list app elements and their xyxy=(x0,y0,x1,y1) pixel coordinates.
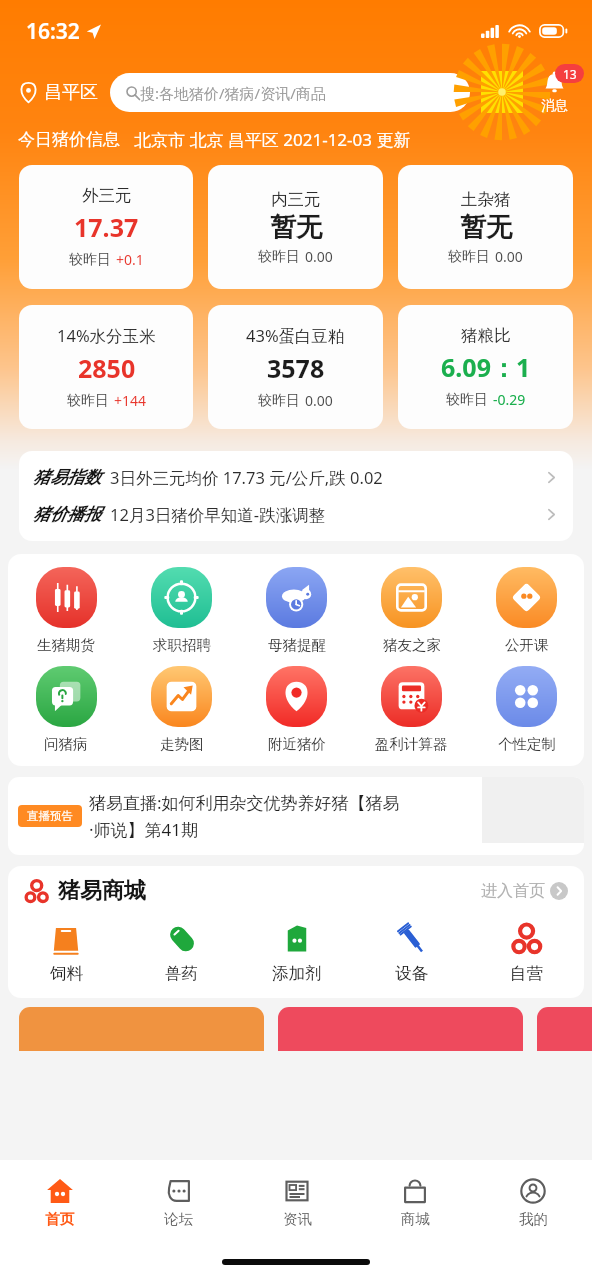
staticText: 附近猪价 xyxy=(268,735,326,753)
staticText: +0.1 xyxy=(116,250,144,269)
staticText: 0.00 xyxy=(305,391,333,410)
staticText: 6.09：1 xyxy=(441,350,531,384)
button[interactable]: 猪价播报 xyxy=(19,496,573,533)
staticText: 外三元 xyxy=(82,185,132,206)
staticText: 16:32 xyxy=(26,17,80,46)
staticText: 盈利计算器 xyxy=(375,735,448,753)
button[interactable]: 个性定制 xyxy=(469,664,584,755)
button[interactable]: 外三元 xyxy=(19,165,193,289)
button[interactable]: 我的 xyxy=(474,1160,592,1244)
staticText: 14%水分玉米 xyxy=(57,324,156,347)
staticText: 我的 xyxy=(519,1210,548,1228)
staticText: 昌平区 xyxy=(44,81,98,104)
staticText: 较昨日 xyxy=(446,391,488,409)
staticText: 内三元 xyxy=(271,189,321,210)
button[interactable]: 猪易商城 xyxy=(8,866,584,916)
staticText: 母猪提醒 xyxy=(268,636,326,654)
button[interactable]: 自营 xyxy=(469,918,584,984)
button[interactable]: 问猪病 xyxy=(8,664,124,755)
button[interactable]: 走势图 xyxy=(124,664,239,755)
staticText: 个性定制 xyxy=(498,735,556,753)
staticText: 首页 xyxy=(45,1210,74,1228)
staticText: 北京市 北京 昌平区 2021-12-03 更新 xyxy=(134,128,411,151)
button[interactable] xyxy=(19,1007,264,1051)
staticText: 走势图 xyxy=(160,735,204,753)
button[interactable]: 附近猪价 xyxy=(239,664,354,755)
button[interactable]: 母猪提醒 xyxy=(239,565,354,656)
button[interactable]: 猪友之家 xyxy=(354,565,469,656)
staticText: 13 xyxy=(563,66,577,82)
staticText: 0.00 xyxy=(305,247,333,266)
staticText: 土杂猪 xyxy=(461,189,511,210)
staticText: 猪价播报 xyxy=(33,504,101,525)
button[interactable]: 求职招聘 xyxy=(124,565,239,656)
button[interactable]: 消息 xyxy=(528,64,580,120)
staticText: 商城 xyxy=(401,1210,430,1228)
button[interactable] xyxy=(278,1007,523,1051)
staticText: 猪易指数 xyxy=(33,467,101,488)
button[interactable]: 猪易指数 xyxy=(19,459,573,496)
staticText: 公开课 xyxy=(505,636,549,654)
staticText: 暂无 xyxy=(460,211,512,244)
staticText: 猪易商城 xyxy=(58,877,146,905)
staticText: 猪易直播:如何利用杂交优势养好猪【猪易 xyxy=(89,791,400,814)
button[interactable]: 昌平区 xyxy=(14,75,102,110)
button[interactable]: 商城 xyxy=(356,1160,474,1244)
button[interactable]: 直播预告 xyxy=(8,777,584,855)
staticText: 3578 xyxy=(267,351,325,385)
button[interactable]: 添加剂 xyxy=(239,918,354,984)
staticText: 求职招聘 xyxy=(153,636,211,654)
staticText: 消息 xyxy=(541,97,568,114)
staticText: 直播预告 xyxy=(27,809,73,823)
staticText: 生猪期货 xyxy=(37,636,95,654)
staticText: 12月3日猪价早知道-跌涨调整 xyxy=(110,503,326,526)
staticText: 较昨日 xyxy=(258,248,300,266)
staticText: 2850 xyxy=(78,351,136,385)
button[interactable]: 14%水分玉米 xyxy=(19,305,193,429)
staticText: 0.00 xyxy=(495,247,523,266)
button[interactable]: 资讯 xyxy=(238,1160,356,1244)
button[interactable] xyxy=(537,1007,592,1051)
staticText: 较昨日 xyxy=(67,392,109,410)
staticText: 猪友之家 xyxy=(383,636,441,654)
staticText: 暂无 xyxy=(270,211,322,244)
staticText: 进入首页 xyxy=(481,881,545,901)
staticText: 猪粮比 xyxy=(461,325,511,346)
button[interactable]: 搜:各地猪价/猪病/资讯/商品 xyxy=(110,73,470,112)
button[interactable]: 生猪期货 xyxy=(8,565,124,656)
staticText: 17.37 xyxy=(74,210,139,244)
button[interactable]: 内三元 xyxy=(208,165,383,289)
button[interactable]: 土杂猪 xyxy=(398,165,573,289)
staticText: 43%蛋白豆粕 xyxy=(246,324,345,347)
button[interactable]: 兽药 xyxy=(124,918,239,984)
staticText: 今日猪价信息 xyxy=(18,129,120,150)
staticText: 较昨日 xyxy=(258,392,300,410)
button[interactable]: 盈利计算器 xyxy=(354,664,469,755)
button[interactable]: 设备 xyxy=(354,918,469,984)
staticText: 搜:各地猪价/猪病/资讯/商品 xyxy=(140,83,326,103)
staticText: 兽药 xyxy=(165,963,198,984)
staticText: 较昨日 xyxy=(69,251,111,269)
button[interactable]: 公开课 xyxy=(469,565,584,656)
button[interactable]: 论坛 xyxy=(119,1160,238,1244)
staticText: +144 xyxy=(114,391,147,410)
staticText: 问猪病 xyxy=(44,735,88,753)
staticText: -0.29 xyxy=(493,390,526,409)
button[interactable]: 首页 xyxy=(0,1160,119,1244)
button[interactable]: 猪粮比 xyxy=(398,305,573,429)
staticText: 添加剂 xyxy=(272,963,322,984)
staticText: 3日外三元均价 17.73 元/公斤,跌 0.02 xyxy=(110,466,383,489)
button[interactable]: 饲料 xyxy=(8,918,124,984)
button[interactable]: 活动入口 xyxy=(480,70,524,114)
staticText: ·师说】第41期 xyxy=(89,818,199,841)
staticText: 饲料 xyxy=(50,963,83,984)
staticText: 自营 xyxy=(510,963,543,984)
staticText: 论坛 xyxy=(164,1210,193,1228)
staticText: 资讯 xyxy=(283,1210,312,1228)
staticText: 较昨日 xyxy=(448,248,490,266)
button[interactable]: 43%蛋白豆粕 xyxy=(208,305,383,429)
staticText: 设备 xyxy=(395,963,428,984)
